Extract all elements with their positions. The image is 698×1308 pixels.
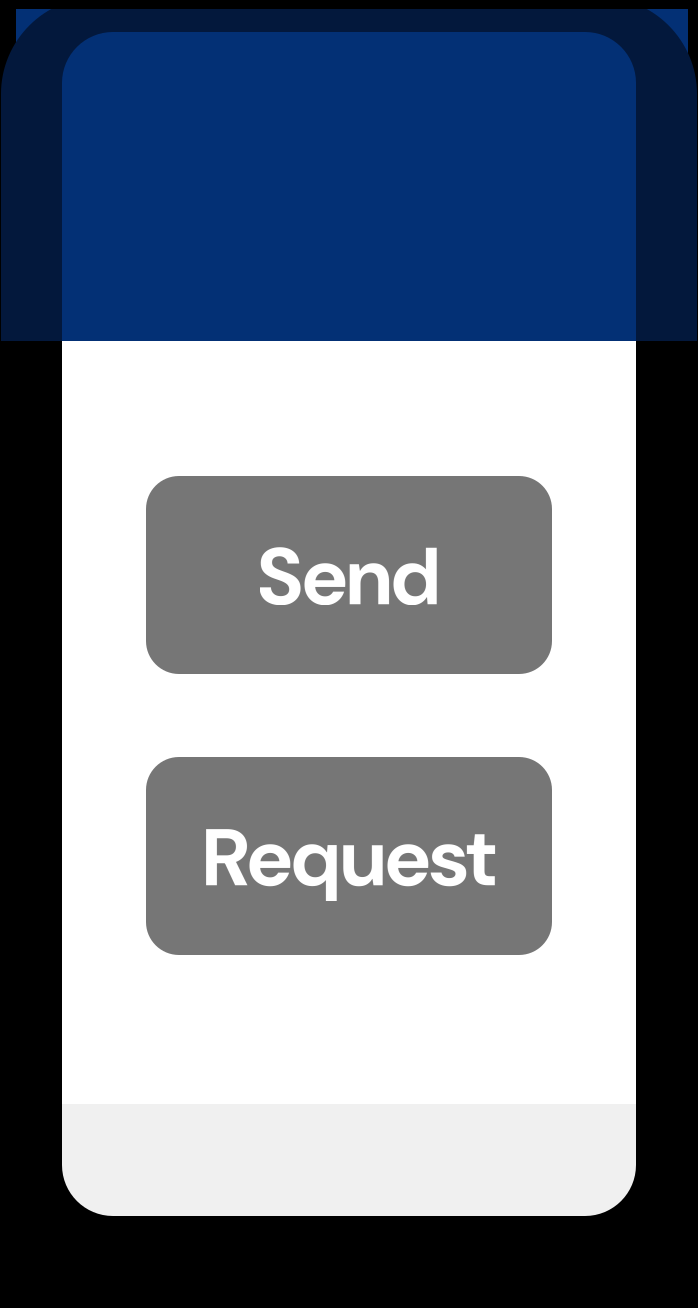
button[interactable]: Send [146,476,552,674]
staticText: Request [202,806,495,910]
button[interactable]: Request [146,757,552,955]
staticText: Send [257,525,440,629]
